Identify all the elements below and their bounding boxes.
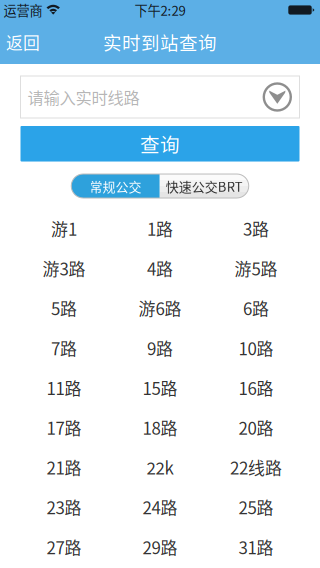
button[interactable]: 1路 — [112, 208, 208, 248]
button[interactable]: 25路 — [208, 487, 304, 527]
staticText: 20路 — [238, 415, 273, 440]
staticText: 3路 — [243, 216, 269, 241]
staticText: 31路 — [238, 535, 273, 559]
button[interactable]: 常规公交 — [71, 174, 160, 198]
staticText: 下午2:29 — [134, 0, 185, 19]
staticText: 23路 — [46, 495, 81, 519]
button[interactable]: 11路 — [16, 368, 112, 407]
button[interactable]: 29路 — [112, 527, 208, 567]
button[interactable]: 18路 — [112, 407, 208, 447]
staticText: 游1 — [51, 216, 77, 241]
button[interactable]: 4路 — [112, 248, 208, 288]
button[interactable]: 21路 — [16, 447, 112, 487]
button[interactable]: 31路 — [208, 527, 304, 567]
staticText: 18路 — [142, 415, 177, 440]
staticText: 25路 — [238, 495, 273, 519]
button[interactable]: 快速公交BRT — [160, 174, 249, 198]
button[interactable]: 23路 — [16, 487, 112, 527]
staticText: 10路 — [238, 336, 273, 360]
staticText: 查询 — [140, 130, 180, 158]
staticText: 6路 — [243, 296, 269, 320]
button[interactable]: 游1 — [16, 208, 112, 248]
button[interactable]: 返回 — [0, 20, 48, 64]
button[interactable]: 22k — [112, 447, 208, 487]
button[interactable]: 选择线路 — [263, 83, 291, 111]
button[interactable]: 16路 — [208, 368, 304, 407]
button[interactable]: 5路 — [16, 288, 112, 328]
button[interactable]: 27路 — [16, 527, 112, 567]
button[interactable]: 20路 — [208, 407, 304, 447]
staticText: 7路 — [51, 336, 77, 360]
button[interactable]: 游6路 — [112, 288, 208, 328]
staticText: 游3路 — [42, 256, 85, 280]
button[interactable]: 22线路 — [208, 447, 304, 487]
staticText: 5路 — [51, 296, 77, 320]
button[interactable]: 9路 — [112, 328, 208, 368]
staticText: 实时到站查询 — [103, 29, 217, 55]
staticText: 15路 — [142, 375, 177, 400]
staticText: 16路 — [238, 375, 273, 400]
button[interactable]: 游3路 — [16, 248, 112, 288]
staticText: 常规公交 — [89, 177, 141, 195]
staticText: 游6路 — [138, 296, 181, 320]
staticText: 27路 — [46, 535, 81, 559]
staticText: 9路 — [147, 336, 173, 360]
staticText: 1路 — [147, 216, 173, 241]
staticText: 11路 — [46, 375, 81, 400]
button[interactable]: 3路 — [208, 208, 304, 248]
staticText: 运营商 — [3, 0, 42, 19]
staticText: 游5路 — [234, 256, 277, 280]
staticText: 返回 — [6, 30, 40, 54]
button[interactable]: 查询 — [20, 126, 299, 161]
button[interactable]: 7路 — [16, 328, 112, 368]
staticText: 21路 — [46, 455, 81, 479]
button[interactable]: 游5路 — [208, 248, 304, 288]
staticText: 4路 — [147, 256, 173, 280]
button[interactable]: 17路 — [16, 407, 112, 447]
staticText: 请输入实时线路 — [27, 85, 139, 109]
button[interactable]: 6路 — [208, 288, 304, 328]
button[interactable]: 15路 — [112, 368, 208, 407]
staticText: 24路 — [142, 495, 177, 519]
button[interactable]: 24路 — [112, 487, 208, 527]
staticText: 22k — [146, 455, 173, 479]
button[interactable]: 10路 — [208, 328, 304, 368]
staticText: 22线路 — [230, 455, 282, 479]
staticText: 17路 — [46, 415, 81, 440]
staticText: 快速公交BRT — [166, 177, 243, 195]
staticText: 29路 — [142, 535, 177, 559]
